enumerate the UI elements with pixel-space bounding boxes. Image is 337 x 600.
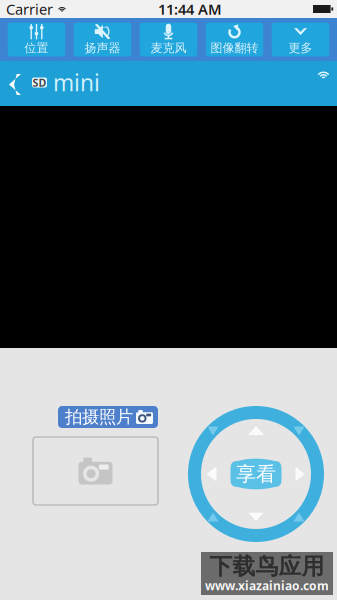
staticText: 享看 — [236, 462, 276, 486]
button[interactable]: 图像翻转 — [206, 22, 263, 56]
button[interactable]: 享看 — [230, 458, 281, 489]
staticText: SD — [32, 75, 46, 90]
staticText: 下载鸟应用 — [209, 553, 324, 580]
staticText: 位置 — [24, 41, 48, 55]
staticText: 拍摄照片 — [65, 406, 133, 428]
staticText: 11:44 AM — [158, 0, 222, 19]
button[interactable]: 麦克风 — [140, 22, 197, 56]
button[interactable]: Left — [199, 459, 223, 488]
button[interactable]: 位置 — [8, 22, 65, 56]
button[interactable]: 拍摄照片 — [58, 406, 158, 428]
staticText: Carrier — [6, 0, 53, 19]
staticText: 更多 — [288, 41, 312, 55]
button[interactable]: 更多 — [272, 22, 329, 56]
staticText: mini — [53, 67, 100, 97]
staticText: 麦克风 — [150, 41, 186, 55]
button[interactable]: Right — [288, 459, 311, 488]
button[interactable]: Back — [0, 61, 32, 106]
staticText: 扬声器 — [84, 41, 120, 55]
button[interactable]: Down — [241, 506, 270, 528]
button[interactable]: Wi-Fi — [310, 63, 337, 104]
staticText: www.xiazainiao.com — [205, 577, 329, 593]
button[interactable]: 扬声器 — [74, 22, 131, 56]
staticText: 图像翻转 — [210, 41, 258, 55]
button[interactable]: Up — [241, 419, 271, 442]
